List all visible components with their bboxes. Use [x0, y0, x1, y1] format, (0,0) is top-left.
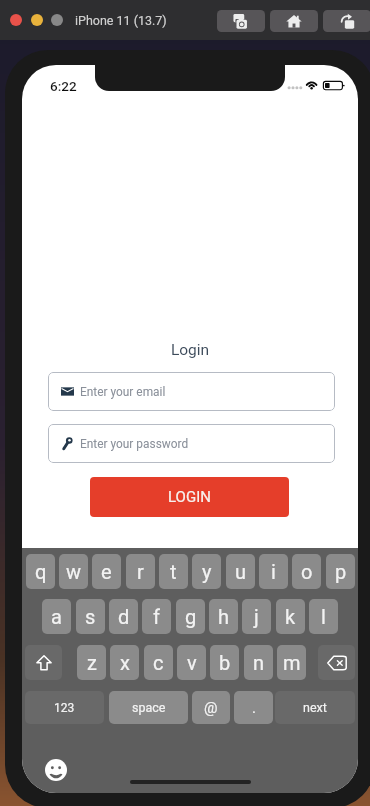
- staticText: LOGIN: [168, 488, 211, 506]
- button[interactable]: f: [142, 599, 171, 634]
- staticText: t: [170, 560, 177, 583]
- staticText: i: [271, 560, 276, 583]
- staticText: p: [335, 560, 347, 583]
- staticText: z: [87, 651, 97, 674]
- button[interactable]: b: [210, 645, 239, 680]
- staticText: @: [204, 699, 218, 717]
- button[interactable]: Home: [270, 10, 318, 32]
- button[interactable]: c: [144, 645, 173, 680]
- staticText: f: [153, 605, 160, 628]
- button[interactable]: e: [92, 554, 121, 589]
- staticText: iPhone 11 (13.7): [75, 13, 167, 28]
- button[interactable]: .: [234, 691, 273, 724]
- button[interactable]: l: [309, 599, 338, 634]
- staticText: k: [285, 605, 296, 628]
- staticText: u: [235, 560, 247, 583]
- button[interactable]: j: [242, 599, 271, 634]
- staticText: .: [252, 699, 256, 717]
- button[interactable]: h: [209, 599, 238, 634]
- button[interactable]: g: [176, 599, 205, 634]
- staticText: e: [101, 560, 112, 583]
- button[interactable]: s: [76, 599, 105, 634]
- staticText: Enter your password: [80, 437, 189, 451]
- button[interactable]: @: [192, 691, 230, 724]
- staticText: Login: [22, 341, 358, 359]
- button[interactable]: t: [159, 554, 188, 589]
- staticText: c: [153, 651, 164, 674]
- button[interactable]: Shift: [25, 645, 62, 680]
- button[interactable]: u: [226, 554, 255, 589]
- button[interactable]: space: [109, 691, 188, 724]
- staticText: Enter your email: [80, 385, 166, 399]
- staticText: v: [187, 651, 197, 674]
- button[interactable]: Backspace: [318, 645, 355, 680]
- button[interactable]: Emoji: [45, 759, 67, 781]
- staticText: space: [132, 700, 166, 715]
- button[interactable]: y: [192, 554, 221, 589]
- staticText: j: [254, 605, 259, 628]
- staticText: s: [85, 605, 96, 628]
- button[interactable]: p: [326, 554, 355, 589]
- staticText: x: [120, 651, 130, 674]
- button[interactable]: Enter your password: [48, 424, 335, 463]
- button[interactable]: m: [277, 645, 306, 680]
- staticText: n: [253, 651, 265, 674]
- button[interactable]: d: [109, 599, 138, 634]
- staticText: l: [321, 605, 326, 628]
- staticText: y: [202, 560, 212, 583]
- staticText: r: [137, 560, 144, 583]
- button[interactable]: q: [26, 554, 55, 589]
- button[interactable]: Screenshot: [217, 10, 265, 32]
- button[interactable]: w: [59, 554, 88, 589]
- button[interactable]: z: [77, 645, 106, 680]
- staticText: h: [218, 605, 230, 628]
- button[interactable]: 123: [25, 691, 104, 724]
- staticText: 123: [54, 701, 75, 715]
- staticText: o: [301, 560, 313, 583]
- button[interactable]: Share: [323, 10, 370, 32]
- staticText: a: [51, 605, 62, 628]
- staticText: b: [219, 651, 231, 674]
- button[interactable]: v: [177, 645, 206, 680]
- button[interactable]: next: [275, 691, 355, 724]
- button[interactable]: o: [292, 554, 321, 589]
- button[interactable]: x: [110, 645, 139, 680]
- staticText: w: [66, 560, 82, 583]
- button[interactable]: k: [276, 599, 305, 634]
- button[interactable]: Enter your email: [48, 372, 335, 411]
- staticText: 6:22: [50, 78, 77, 94]
- button[interactable]: LOGIN: [90, 477, 289, 517]
- button[interactable]: r: [126, 554, 155, 589]
- staticText: q: [35, 560, 47, 583]
- staticText: d: [118, 605, 130, 628]
- staticText: g: [185, 605, 197, 628]
- button[interactable]: a: [42, 599, 71, 634]
- staticText: next: [303, 700, 327, 715]
- button[interactable]: i: [259, 554, 288, 589]
- staticText: m: [283, 651, 301, 674]
- button[interactable]: n: [244, 645, 273, 680]
